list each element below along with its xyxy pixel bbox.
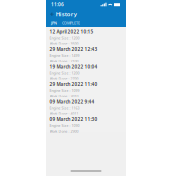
button[interactable]: 29 March 2022 11:40 — [46, 79, 126, 97]
staticText: JPN — [51, 20, 57, 26]
staticText: 11:06 — [51, 1, 64, 8]
button[interactable]: JPN — [51, 20, 57, 26]
staticText: Engine Size : 1200 — [49, 36, 79, 41]
staticText: Engine Size : 1499 — [49, 53, 79, 58]
staticText: 09 March 2022 11:30 — [49, 116, 97, 122]
staticText: 19 March 2022 10:04 — [49, 64, 97, 70]
staticText: History — [56, 10, 77, 18]
button[interactable]: 09 March 2022 9:44 — [46, 97, 126, 114]
staticText: Engine Size : 1090 — [49, 123, 79, 128]
staticText: Engine Size : 1163 — [49, 106, 79, 111]
staticText: Work Done : 2700 — [49, 76, 78, 81]
staticText: 12 April 2022 10:15 — [49, 29, 93, 35]
staticText: Engine Size : 1200 — [49, 71, 79, 76]
staticText: Work Done : 4011 — [49, 111, 78, 116]
staticText: Work Done : 3010 — [49, 94, 78, 99]
button[interactable]: COMPLETE — [62, 20, 80, 26]
staticText: Work Done : 3500 — [49, 41, 78, 46]
staticText: 09 March 2022 9:44 — [49, 99, 94, 105]
button[interactable]: 09 March 2022 11:30 — [46, 114, 126, 132]
button[interactable]: 29 March 2022 12:43 — [46, 44, 126, 62]
button[interactable]: 12 April 2022 10:15 — [46, 27, 126, 44]
staticText: Engine Size : 1099 — [49, 88, 79, 93]
button[interactable]: 19 March 2022 10:04 — [46, 62, 126, 79]
staticText: 29 March 2022 12:43 — [49, 46, 97, 52]
button[interactable]: Back — [50, 11, 53, 17]
staticText: 29 March 2022 11:40 — [49, 81, 97, 87]
staticText: COMPLETE — [62, 20, 80, 26]
staticText: Work Done : 2100 — [49, 59, 78, 64]
staticText: Work Done : 2900 — [49, 129, 78, 134]
